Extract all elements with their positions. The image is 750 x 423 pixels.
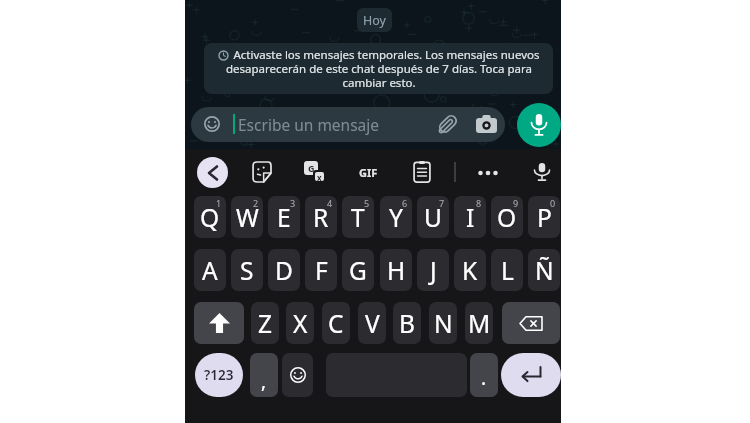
button[interactable]: Ñ: [528, 249, 560, 291]
button[interactable]: G: [342, 249, 374, 291]
button[interactable]: N: [429, 302, 457, 344]
staticText: Hoy: [363, 12, 386, 29]
staticText: x: [317, 172, 322, 181]
staticText: G: [308, 162, 315, 174]
staticText: M: [468, 307, 491, 340]
staticText: P: [537, 201, 552, 234]
staticText: desaparecerán de este chat después de 7 …: [226, 61, 532, 77]
staticText: ,: [261, 368, 267, 394]
staticText: Escribe un mensaje: [238, 114, 380, 135]
staticText: I: [466, 201, 475, 234]
staticText: Activaste los mensajes temporales. Los m…: [233, 47, 540, 63]
staticText: H: [387, 254, 406, 287]
staticText: G: [349, 254, 367, 287]
button[interactable]: E: [268, 196, 300, 238]
button[interactable]: V: [358, 302, 386, 344]
staticText: 9: [513, 197, 519, 209]
staticText: cambiar esto.: [342, 75, 416, 91]
staticText: A: [202, 254, 218, 287]
staticText: U: [424, 201, 442, 234]
button[interactable]: Z: [251, 302, 279, 344]
staticText: 3: [290, 197, 296, 209]
button[interactable]: P: [528, 196, 560, 238]
button[interactable]: ,: [250, 353, 278, 397]
button[interactable]: Hoy: [357, 8, 392, 32]
button[interactable]: Y: [380, 196, 412, 238]
button[interactable]: .: [470, 353, 498, 397]
button[interactable]: S: [231, 249, 263, 291]
staticText: R: [313, 201, 329, 234]
staticText: 0: [550, 197, 556, 209]
button[interactable]: O: [491, 196, 523, 238]
staticText: Q: [200, 201, 220, 234]
staticText: L: [501, 254, 514, 287]
staticText: 2: [253, 197, 259, 209]
staticText: E: [277, 201, 291, 234]
button[interactable]: [501, 353, 561, 397]
staticText: W: [236, 201, 259, 234]
staticText: X: [293, 307, 308, 340]
button[interactable]: [197, 157, 228, 188]
button[interactable]: D: [268, 249, 300, 291]
button[interactable]: A: [194, 249, 226, 291]
staticText: T: [351, 201, 365, 234]
staticText: 7: [439, 197, 445, 209]
staticText: J: [430, 254, 437, 287]
button[interactable]: X: [286, 302, 314, 344]
button[interactable]: Q: [194, 196, 226, 238]
button[interactable]: W: [231, 196, 263, 238]
staticText: V: [365, 307, 380, 340]
button[interactable]: Escribe un mensaje: [191, 107, 505, 142]
staticText: Ñ: [535, 254, 554, 287]
staticText: GIF: [359, 165, 378, 180]
button[interactable]: [411, 161, 433, 183]
staticText: K: [462, 254, 478, 287]
staticText: 4: [327, 197, 333, 209]
staticText: F: [315, 254, 328, 287]
button[interactable]: [250, 161, 272, 183]
staticText: S: [240, 254, 254, 287]
staticText: ?123: [204, 366, 234, 384]
staticText: Z: [258, 307, 273, 340]
button[interactable]: [477, 161, 499, 183]
staticText: O: [497, 201, 517, 234]
button[interactable]: ?123: [195, 353, 243, 397]
button[interactable]: K: [454, 249, 486, 291]
button[interactable]: I: [454, 196, 486, 238]
staticText: Y: [389, 201, 403, 234]
staticText: D: [275, 254, 293, 287]
button[interactable]: H: [380, 249, 412, 291]
staticText: 6: [402, 197, 408, 209]
button[interactable]: G: [304, 161, 326, 183]
staticText: C: [328, 307, 344, 340]
button[interactable]: J: [417, 249, 449, 291]
button[interactable]: B: [393, 302, 421, 344]
button[interactable]: U: [417, 196, 449, 238]
button[interactable]: T: [342, 196, 374, 238]
button[interactable]: [517, 103, 561, 147]
staticText: 8: [476, 197, 482, 209]
button[interactable]: GIF: [351, 161, 385, 183]
button[interactable]: F: [305, 249, 337, 291]
button[interactable]: [194, 302, 244, 344]
button[interactable]: Activaste los mensajes temporales. Los m…: [204, 43, 553, 94]
staticText: N: [434, 307, 453, 340]
staticText: 5: [364, 197, 370, 209]
button[interactable]: [531, 161, 553, 183]
button[interactable]: C: [322, 302, 350, 344]
staticText: .: [481, 365, 487, 391]
staticText: 1: [216, 197, 222, 209]
staticText: B: [399, 307, 415, 340]
button[interactable]: R: [305, 196, 337, 238]
button[interactable]: M: [465, 302, 493, 344]
button[interactable]: [282, 353, 313, 397]
button[interactable]: L: [491, 249, 523, 291]
button[interactable]: [502, 302, 560, 344]
